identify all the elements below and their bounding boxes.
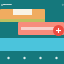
button[interactable]: Saved bbox=[32, 51, 48, 64]
button[interactable]: You bbox=[48, 51, 64, 64]
button[interactable] bbox=[18, 22, 64, 35]
button[interactable] bbox=[0, 9, 45, 22]
button[interactable]: Search bbox=[61, 0, 64, 9]
button[interactable]: Home bbox=[0, 51, 16, 64]
button[interactable]: Add new item bbox=[53, 25, 64, 36]
staticText: Discover bbox=[3, 3, 61, 6]
button[interactable]: Feed bbox=[16, 51, 32, 64]
button[interactable]: Navigation menu bbox=[0, 0, 3, 9]
